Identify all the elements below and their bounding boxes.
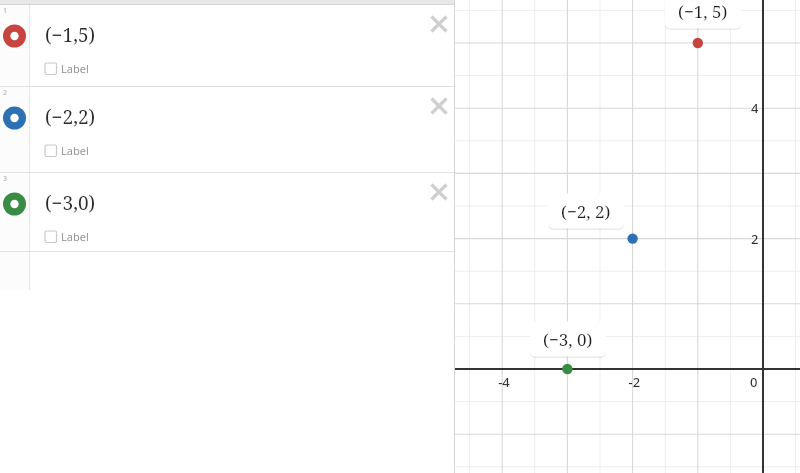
button[interactable]: Expression (-1,5): [0, 5, 455, 86]
button[interactable]: Point style (-2,2): [3, 107, 26, 130]
button[interactable]: Expression (-3,0): [0, 173, 455, 251]
button[interactable]: Point style (-3,0): [3, 193, 26, 216]
button[interactable]: Label checkbox: [43, 141, 98, 161]
button[interactable]: Delete expression (-1,5): [425, 10, 453, 38]
button[interactable]: Delete expression (-2,2): [425, 92, 453, 120]
button[interactable]: Label checkbox: [43, 59, 98, 79]
button[interactable]: Expression (-2,2): [0, 87, 455, 172]
button[interactable]: Label checkbox: [43, 227, 98, 247]
button[interactable]: Point style (-1,5): [3, 25, 26, 48]
button[interactable]: Delete expression (-3,0): [425, 178, 453, 206]
button[interactable]: Graph canvas: [455, 0, 800, 473]
